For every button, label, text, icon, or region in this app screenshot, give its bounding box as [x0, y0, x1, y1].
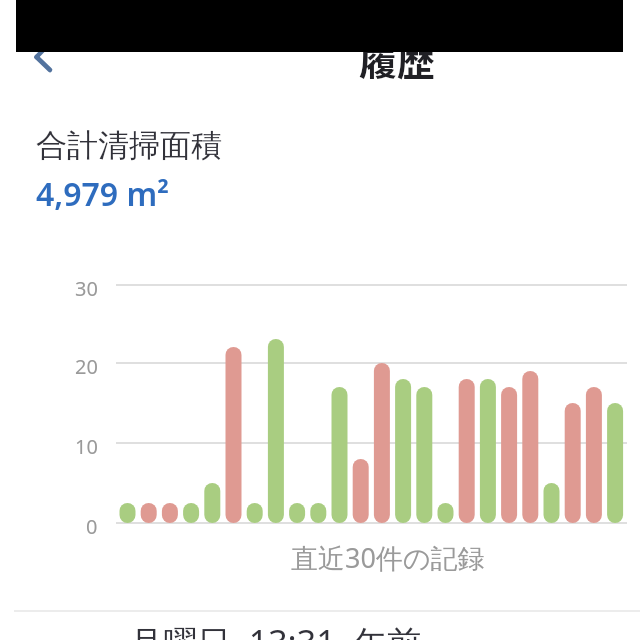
staticText: 合計清掃面積: [36, 126, 222, 165]
button[interactable]: 月曜日 13:31 午前: [0, 612, 640, 640]
staticText: 履歴: [359, 31, 436, 86]
button[interactable]: [24, 38, 64, 80]
staticText: 月曜日 13:31 午前: [129, 619, 422, 640]
staticText: 直近30件の記録: [291, 539, 485, 576]
staticText: 0: [86, 513, 98, 537]
staticText: 20: [75, 353, 98, 377]
staticText: 30: [75, 275, 98, 299]
staticText: 4,979 m²: [36, 172, 169, 216]
staticText: 10: [75, 433, 98, 457]
